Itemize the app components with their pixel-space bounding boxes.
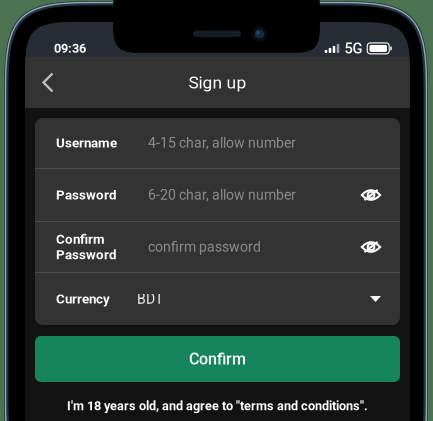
- staticText: 6-20 char, allow number: [148, 187, 296, 203]
- staticText: I'm 18 years old, and agree to "terms an…: [67, 399, 368, 413]
- staticText: Username: [56, 135, 117, 151]
- staticText: 5G: [344, 40, 362, 57]
- button[interactable]: Show confirm password: [361, 239, 381, 255]
- button[interactable]: Back: [25, 57, 71, 108]
- staticText: Sign up: [188, 72, 246, 93]
- staticText: Confirm: [189, 350, 246, 368]
- staticText: BDT: [137, 291, 163, 307]
- staticText: Confirm Password: [56, 231, 117, 263]
- staticText: confirm password: [148, 239, 261, 255]
- staticText: Currency: [56, 291, 110, 307]
- staticText: Password: [56, 187, 117, 203]
- staticText: 09:36: [54, 41, 86, 56]
- button[interactable]: Confirm: [35, 336, 400, 382]
- button[interactable]: Show password: [361, 187, 381, 203]
- button[interactable]: I'm 18 years old, and agree to "terms an…: [35, 396, 400, 416]
- staticText: 4-15 char, allow number: [148, 135, 296, 151]
- button[interactable]: Select currency: [370, 296, 381, 302]
